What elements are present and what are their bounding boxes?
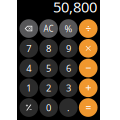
button[interactable]: 9 bbox=[59, 39, 78, 58]
button[interactable]: Percent bbox=[59, 19, 78, 38]
button[interactable]: Multiply bbox=[79, 39, 98, 58]
button[interactable]: Delete bbox=[19, 19, 38, 38]
staticText: 3 bbox=[66, 82, 71, 94]
staticText: 2 bbox=[46, 82, 51, 94]
button[interactable]: All clear bbox=[39, 19, 58, 38]
button[interactable]: 8 bbox=[39, 39, 58, 58]
staticText: 50,800 bbox=[53, 0, 97, 16]
staticText: AC bbox=[44, 23, 54, 34]
staticText: 7 bbox=[26, 42, 31, 54]
staticText: 5 bbox=[46, 62, 51, 74]
button[interactable]: Equals bbox=[79, 98, 98, 117]
button[interactable]: 4 bbox=[19, 59, 38, 77]
staticText: 0 bbox=[46, 101, 51, 114]
staticText: 9 bbox=[66, 42, 71, 54]
button[interactable]: 7 bbox=[19, 39, 38, 58]
button[interactable]: 5 bbox=[39, 59, 58, 77]
staticText: 6 bbox=[66, 62, 71, 74]
button[interactable]: Plus bbox=[79, 78, 98, 97]
button[interactable]: Divide bbox=[79, 19, 98, 38]
staticText: 4 bbox=[26, 62, 31, 74]
staticText: % bbox=[64, 22, 72, 35]
button[interactable]: Decimal point bbox=[59, 98, 78, 117]
staticText: 8 bbox=[46, 42, 51, 54]
button[interactable]: 0 bbox=[39, 98, 58, 117]
button[interactable]: 2 bbox=[39, 78, 58, 97]
button[interactable]: 6 bbox=[59, 59, 78, 77]
button[interactable]: 3 bbox=[59, 78, 78, 97]
staticText: . bbox=[67, 101, 70, 114]
button[interactable]: Change sign bbox=[19, 98, 38, 117]
button[interactable]: 1 bbox=[19, 78, 38, 97]
staticText: 1 bbox=[26, 82, 31, 94]
button[interactable]: Minus bbox=[79, 59, 98, 77]
